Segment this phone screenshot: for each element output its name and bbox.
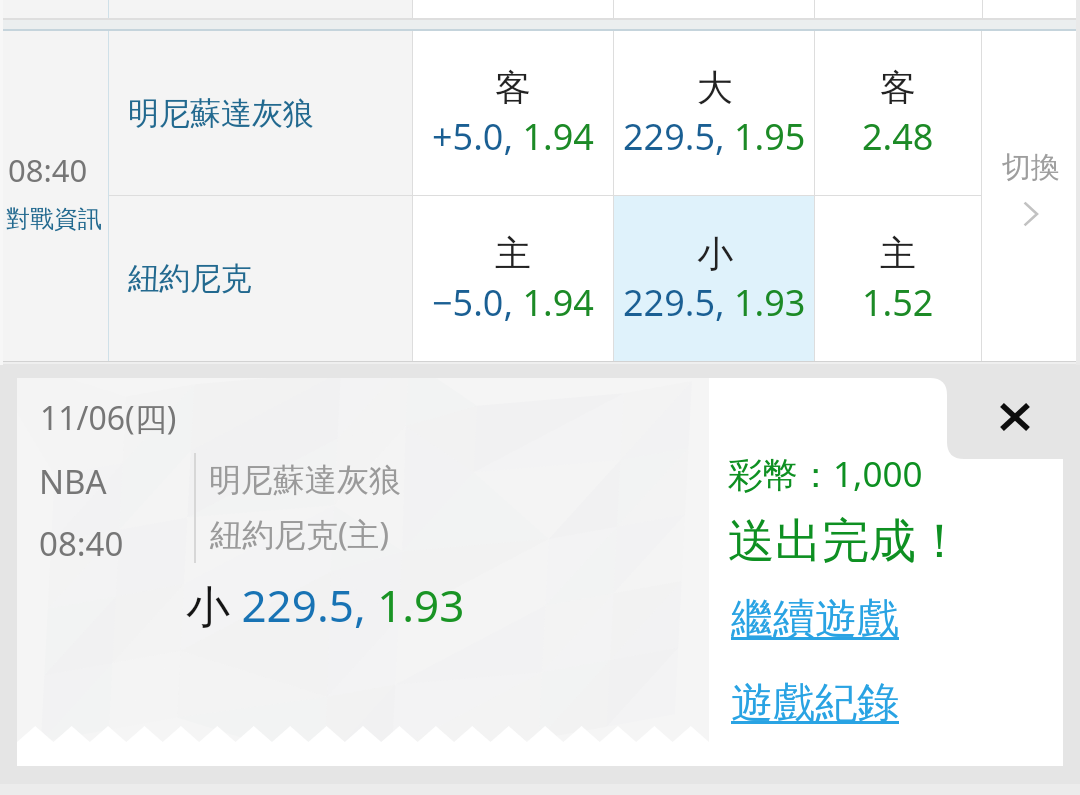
button[interactable]: 切換 [982,31,1080,361]
staticText: 229.5, 1.93 [623,278,806,327]
staticText: 客 [495,65,531,110]
staticText: 229.5, 1.95 [623,112,806,161]
staticText: 1.52 [862,278,934,327]
staticText: 送出完成！ [728,512,963,571]
staticText: 主 [880,231,916,276]
button[interactable]: 小 [614,196,814,361]
button[interactable]: 對戰資訊 [6,204,102,234]
staticText: −5.0, 1.94 [432,278,594,327]
staticText: 客 [880,65,916,110]
button[interactable]: 客 [413,31,613,195]
button[interactable]: 繼續遊戲 [731,593,900,643]
staticText: 08:40 [8,149,88,191]
staticText: 小 229.5, 1.93 [186,575,465,635]
staticText: +5.0, 1.94 [432,112,594,161]
staticText: 紐約尼克 [128,259,252,298]
staticText: 小 [697,231,733,276]
button[interactable]: 關閉 [947,376,1080,459]
staticText: 對戰資訊 [6,204,102,234]
staticText: 彩幣：1,000 [728,450,923,498]
button[interactable]: 主 [815,196,981,361]
staticText: 2.48 [862,112,934,161]
button[interactable]: 主 [413,196,613,361]
staticText: 遊戲紀錄 [731,677,899,727]
staticText: 切換 [1002,149,1060,186]
button[interactable]: 紐約尼克 [109,196,412,361]
staticText: 11/06(四) [40,396,177,440]
staticText: 08:40 [39,521,124,566]
button[interactable]: 大 [614,31,814,195]
button[interactable]: 客 [815,31,981,195]
staticText: 繼續遊戲 [731,593,899,643]
staticText: 主 [495,231,531,276]
button[interactable]: 遊戲紀錄 [731,677,900,727]
staticText: 紐約尼克(主) [210,512,390,556]
button[interactable]: 明尼蘇達灰狼 [109,31,412,195]
staticText: NBA [39,459,107,504]
staticText: 明尼蘇達灰狼 [128,94,314,133]
staticText: 大 [697,65,733,110]
staticText: 明尼蘇達灰狼 [209,460,401,500]
